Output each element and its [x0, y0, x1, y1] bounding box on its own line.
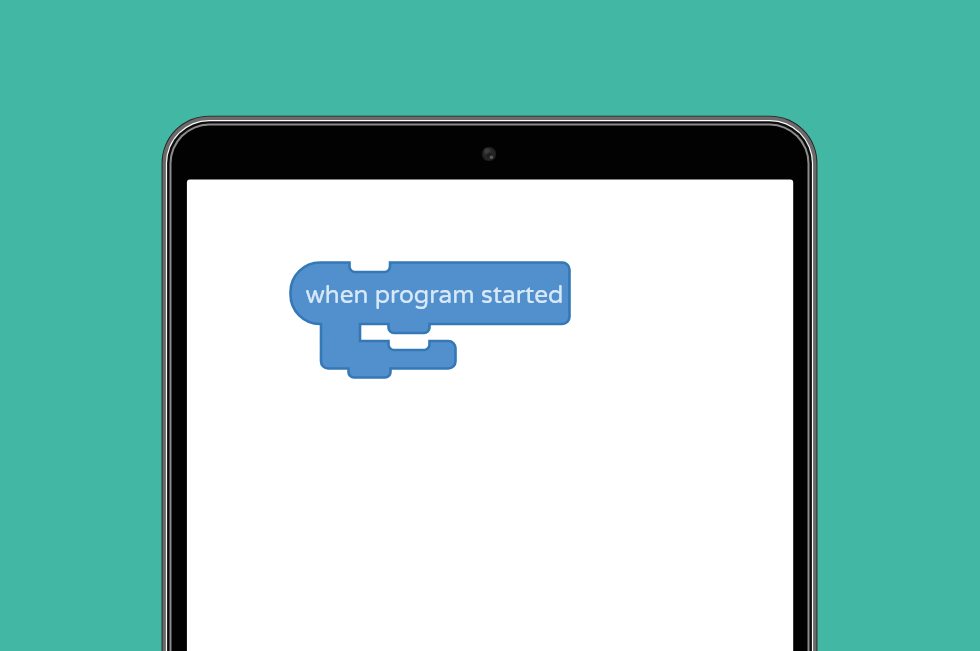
button[interactable]: Block editor workspace	[187, 180, 793, 651]
button[interactable]: when program started block	[290, 262, 570, 378]
